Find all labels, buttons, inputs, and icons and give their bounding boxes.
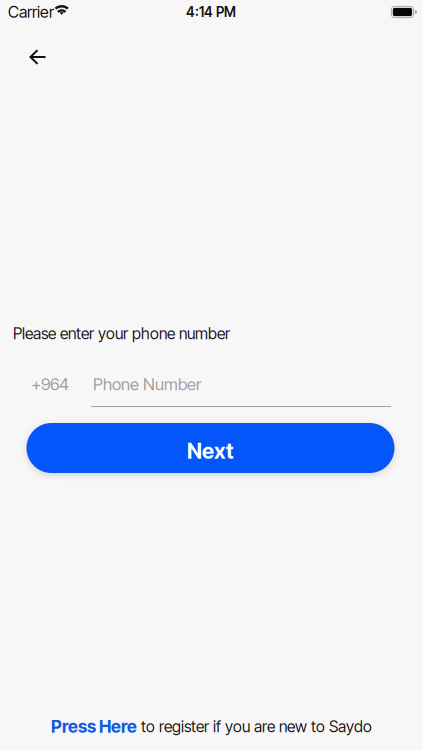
staticText: Next (187, 438, 234, 464)
staticText: Phone Number (93, 374, 201, 394)
button[interactable]: Back (15, 37, 61, 77)
staticText: 4:14 PM (186, 4, 236, 20)
button[interactable]: Press Here (51, 716, 372, 737)
staticText: Carrier (8, 2, 54, 22)
staticText: Please enter your phone number (13, 324, 230, 343)
staticText: +964 (31, 374, 69, 394)
staticText: to register if you are new to Saydo (137, 717, 372, 736)
staticText: Press Here (51, 716, 137, 737)
button[interactable]: Next (26, 423, 394, 473)
